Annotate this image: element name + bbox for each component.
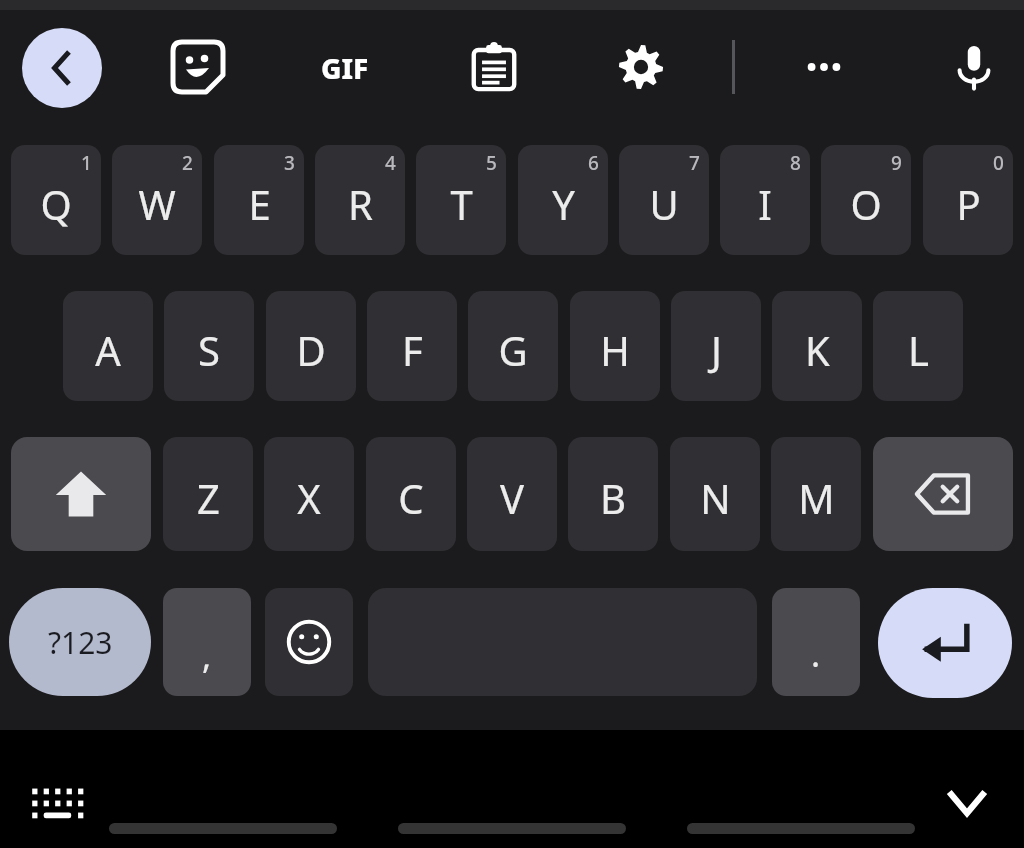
staticText: C [398,471,424,525]
staticText: Z [197,471,220,525]
button[interactable]: ?123 [9,588,151,696]
staticText: 6 [588,150,599,176]
staticText: K [805,323,830,377]
staticText: U [649,177,679,231]
button[interactable]: Settings [608,34,674,100]
button[interactable]: Q [11,145,101,255]
button[interactable]: U [619,145,709,255]
staticText: T [450,177,473,231]
button[interactable]: E [214,145,304,255]
staticText: V [500,471,524,525]
button[interactable]: . [772,588,860,696]
staticText: 0 [993,150,1004,176]
button[interactable]: M [771,437,861,551]
button[interactable]: Shift [11,437,151,551]
button[interactable]: K [772,291,862,401]
button[interactable]: Stickers [165,34,231,100]
staticText: GIF [321,49,369,87]
staticText: A [95,323,121,377]
button[interactable]: F [367,291,457,401]
button[interactable]: X [264,437,354,551]
button[interactable]: Back [22,28,102,108]
staticText: I [758,177,772,231]
button[interactable]: , [163,588,251,696]
staticText: W [138,177,176,231]
staticText: B [600,471,626,525]
staticText: 9 [891,150,902,176]
staticText: R [348,177,373,231]
button[interactable]: Emoji [265,588,353,696]
button[interactable]: O [821,145,911,255]
staticText: L [908,323,929,377]
button[interactable]: D [266,291,356,401]
staticText: 4 [385,150,396,176]
staticText: Y [552,177,575,231]
staticText: M [798,471,835,525]
staticText: P [956,177,981,231]
staticText: N [700,471,731,525]
button[interactable]: R [315,145,405,255]
button[interactable]: L [873,291,963,401]
button[interactable]: More options [791,34,857,100]
staticText: . [811,631,821,677]
button[interactable]: Backspace [873,437,1013,551]
button[interactable]: B [568,437,658,551]
button[interactable]: C [366,437,456,551]
button[interactable]: Clipboard [461,34,527,100]
button[interactable]: V [467,437,557,551]
button[interactable]: I [720,145,810,255]
staticText: Q [40,177,72,231]
staticText: , [202,633,212,679]
staticText: 5 [486,150,497,176]
button[interactable]: H [570,291,660,401]
staticText: J [711,323,722,377]
staticText: ?123 [48,622,113,663]
button[interactable]: W [112,145,202,255]
button[interactable]: Hide keyboard [930,774,1004,830]
button[interactable]: G [468,291,558,401]
button[interactable]: J [671,291,761,401]
button[interactable]: Voice input [941,34,1007,100]
staticText: F [402,323,423,377]
staticText: D [296,323,326,377]
button[interactable]: Z [163,437,253,551]
staticText: G [498,323,528,377]
staticText: 8 [790,150,801,176]
button[interactable]: T [416,145,506,255]
staticText: H [600,323,630,377]
staticText: E [248,177,271,231]
button[interactable]: A [63,291,153,401]
staticText: S [198,323,220,377]
button[interactable]: S [164,291,254,401]
staticText: 1 [81,150,92,176]
staticText: 3 [284,150,295,176]
button[interactable]: P [923,145,1013,255]
staticText: 7 [689,150,700,176]
staticText: O [850,177,882,231]
button[interactable]: Switch keyboard [26,778,88,826]
button[interactable]: N [670,437,760,551]
button[interactable]: GIF [311,34,379,102]
button[interactable]: Enter [878,588,1012,698]
button[interactable]: Y [518,145,608,255]
staticText: X [297,471,321,525]
staticText: 2 [182,150,193,176]
